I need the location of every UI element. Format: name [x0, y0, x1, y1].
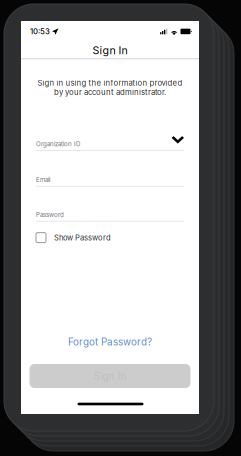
button[interactable]: Sign In	[29, 364, 190, 388]
staticText: Sign In	[93, 370, 126, 382]
staticText: Email	[36, 176, 50, 183]
staticText: Sign In	[92, 44, 127, 57]
staticText: Password	[36, 211, 64, 218]
staticText: Organization ID	[36, 140, 80, 148]
button[interactable]: Show Password	[21, 230, 199, 246]
staticText: 10:53	[30, 27, 50, 36]
staticText: Show Password	[54, 233, 111, 242]
staticText: by your account administrator.	[54, 88, 166, 97]
staticText: Forgot Password?	[68, 336, 152, 348]
button[interactable]: Forgot Password?	[21, 334, 199, 350]
staticText: Sign in using the information provided	[37, 78, 182, 88]
